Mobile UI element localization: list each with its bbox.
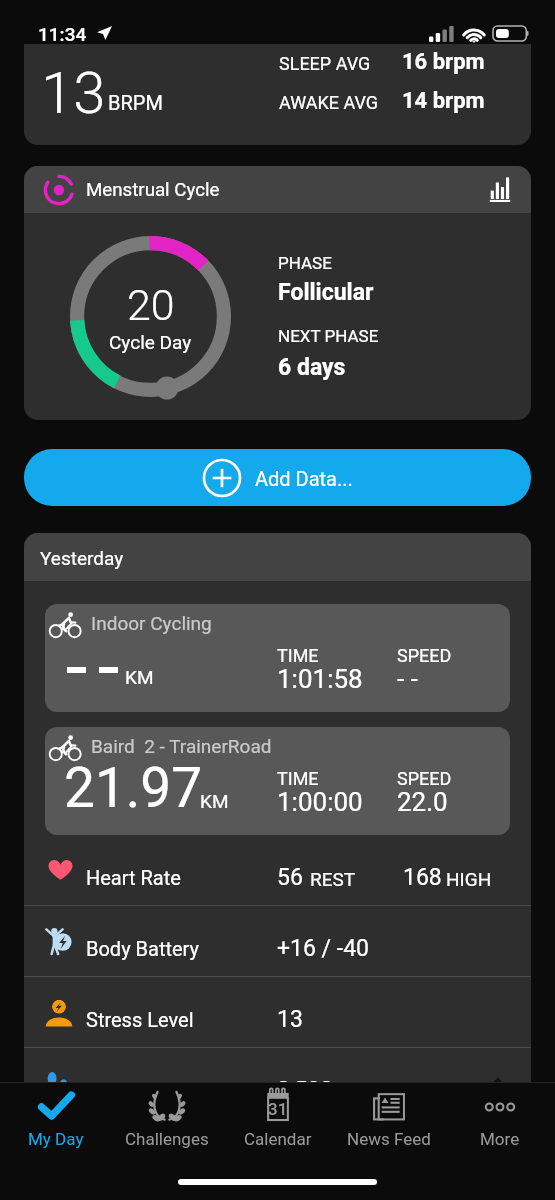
staticText: Cycle Day [109, 331, 192, 353]
button[interactable]: Menstrual Cycle [24, 166, 531, 213]
staticText: Calendar [244, 1129, 312, 1149]
staticText: Baird 2 - TrainerRoad [91, 735, 272, 757]
staticText: 1:00:00 [277, 787, 363, 817]
staticText: Stress Level [86, 1008, 194, 1031]
staticText: KM [200, 790, 229, 812]
staticText: 13 [41, 59, 106, 127]
button[interactable]: Indoor Cycling [45, 604, 510, 712]
button[interactable]: Add Data... [24, 449, 531, 506]
staticText: Add Data... [255, 467, 353, 490]
staticText: SLEEP AVG [279, 53, 371, 74]
staticText: 14 brpm [402, 88, 485, 114]
button[interactable]: Stress Level [24, 977, 531, 1047]
staticText: - - [397, 664, 418, 694]
staticText: TIME [277, 768, 319, 789]
staticText: 6 days [278, 354, 346, 381]
staticText: More [480, 1129, 520, 1149]
staticText: My Day [28, 1129, 84, 1149]
button[interactable]: Challenges [111, 1083, 222, 1167]
button[interactable]: 31 [222, 1083, 333, 1167]
staticText: HIGH [446, 868, 492, 890]
button[interactable]: My Day [0, 1083, 111, 1167]
staticText: +16 / -40 [277, 935, 370, 962]
staticText: 21.97 [64, 756, 203, 820]
staticText: 2,593 [277, 1077, 334, 1104]
staticText: Body Battery [86, 937, 200, 960]
button[interactable]: Steps [24, 1048, 531, 1118]
staticText: 1:01:58 [277, 664, 363, 694]
staticText: SPEED [397, 645, 452, 666]
staticText: TIME [277, 645, 319, 666]
staticText: 168 [403, 864, 442, 891]
staticText: News Feed [347, 1129, 431, 1149]
button[interactable]: Body Battery [24, 906, 531, 976]
staticText: 11:34 [38, 23, 87, 45]
button[interactable]: More [444, 1083, 555, 1167]
staticText: 20 [127, 280, 175, 330]
button[interactable]: Charts [485, 175, 515, 205]
staticText: AWAKE AVG [279, 92, 379, 113]
staticText: SPEED [397, 768, 452, 789]
staticText: Follicular [278, 279, 374, 306]
staticText: 13 [277, 1006, 303, 1033]
staticText: Menstrual Cycle [86, 179, 220, 201]
staticText: 31 [268, 1099, 288, 1119]
staticText: 22.0 [397, 787, 448, 817]
button[interactable]: Yesterday [24, 533, 531, 581]
button[interactable]: 13 [24, 44, 531, 145]
staticText: NEXT PHASE [278, 326, 379, 346]
staticText: KM [125, 666, 154, 688]
staticText: 56 [277, 864, 303, 891]
staticText: Indoor Cycling [91, 612, 212, 634]
staticText: PHASE [278, 253, 332, 273]
button[interactable]: News Feed [333, 1083, 444, 1167]
staticText: Yesterday [40, 547, 124, 569]
other: Edit [479, 1074, 505, 1100]
button[interactable]: Heart Rate [24, 835, 531, 905]
staticText: Heart Rate [86, 866, 181, 889]
staticText: Challenges [125, 1129, 209, 1149]
staticText: 16 brpm [402, 49, 485, 75]
button[interactable]: Baird 2 - TrainerRoad [45, 727, 510, 835]
staticText: Steps [86, 1079, 137, 1102]
staticText: BRPM [108, 91, 163, 114]
staticText: REST [310, 868, 356, 890]
